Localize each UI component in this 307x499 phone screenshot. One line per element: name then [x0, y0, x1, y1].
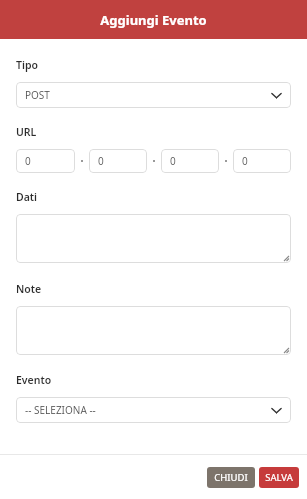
staticText: -- SELEZIONA --: [25, 403, 271, 417]
button[interactable]: POST: [16, 82, 291, 108]
button[interactable]: -- SELEZIONA --: [16, 397, 291, 423]
button[interactable]: 0: [16, 149, 75, 173]
button[interactable]: CHIUDI: [207, 467, 255, 488]
staticText: 0: [170, 154, 176, 168]
staticText: Dati: [16, 190, 38, 204]
staticText: 0: [242, 154, 248, 168]
staticText: Note: [16, 282, 42, 296]
staticText: Tipo: [16, 58, 38, 72]
staticText: SALVA: [265, 471, 293, 484]
button[interactable]: 0: [161, 149, 219, 173]
button[interactable]: Note text area: [16, 306, 291, 355]
staticText: URL: [16, 125, 37, 139]
button[interactable]: 0: [89, 149, 147, 173]
staticText: Evento: [16, 373, 52, 387]
button[interactable]: SALVA: [259, 467, 299, 488]
staticText: CHIUDI: [214, 471, 248, 484]
button[interactable]: Dati text area: [16, 214, 291, 263]
staticText: POST: [25, 88, 271, 102]
button[interactable]: 0: [233, 149, 291, 173]
staticText: Aggiungi Evento: [100, 11, 207, 29]
staticText: 0: [25, 154, 31, 168]
staticText: 0: [98, 154, 104, 168]
